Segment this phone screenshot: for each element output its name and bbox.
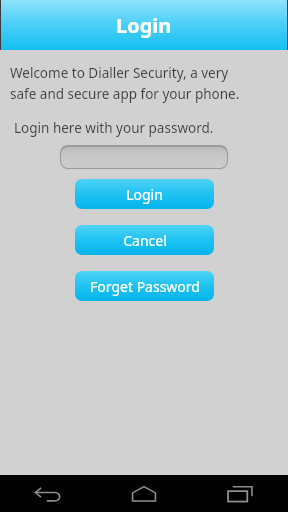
button[interactable] xyxy=(61,147,227,168)
button[interactable]: Back xyxy=(0,475,96,512)
staticText: Login xyxy=(126,185,163,204)
staticText: Welcome to Dialler Security, a very safe… xyxy=(10,64,240,103)
staticText: Forget Password xyxy=(90,277,200,296)
staticText: Login xyxy=(116,12,172,39)
button[interactable]: Recent apps xyxy=(192,475,288,512)
staticText: Login here with your password. xyxy=(14,119,214,137)
button[interactable]: Forget Password xyxy=(75,271,214,301)
staticText: Cancel xyxy=(123,231,167,250)
button[interactable]: Login xyxy=(75,179,214,209)
button[interactable]: Cancel xyxy=(75,225,214,255)
button[interactable]: Home xyxy=(96,475,192,512)
